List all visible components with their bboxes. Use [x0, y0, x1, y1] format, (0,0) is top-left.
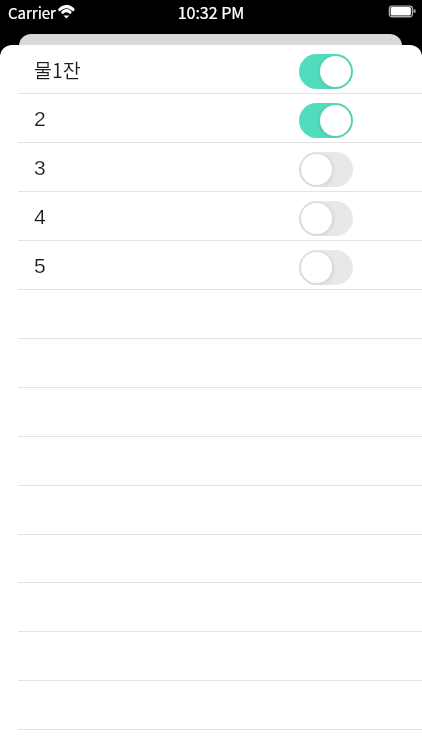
- button[interactable]: [0, 486, 422, 535]
- button[interactable]: [0, 535, 422, 584]
- staticText: 5: [34, 254, 46, 277]
- button[interactable]: 물1잔: [0, 45, 422, 94]
- button[interactable]: Toggle off: [299, 250, 353, 285]
- button[interactable]: 2: [0, 94, 422, 143]
- staticText: 2: [34, 107, 46, 130]
- button[interactable]: [0, 633, 422, 682]
- staticText: 3: [34, 156, 46, 179]
- staticText: Carrier: [8, 2, 56, 24]
- button[interactable]: Toggle off: [299, 201, 353, 236]
- button[interactable]: 3: [0, 143, 422, 192]
- button[interactable]: 4: [0, 192, 422, 241]
- button[interactable]: [0, 682, 422, 731]
- button[interactable]: [0, 339, 422, 388]
- button[interactable]: [0, 388, 422, 437]
- staticText: 4: [34, 205, 46, 228]
- button[interactable]: Toggle on: [299, 54, 353, 89]
- staticText: 10:32 PM: [0, 0, 422, 23]
- staticText: 물1잔: [34, 55, 81, 83]
- button[interactable]: [0, 290, 422, 339]
- button[interactable]: 5: [0, 241, 422, 290]
- button[interactable]: [0, 584, 422, 633]
- button[interactable]: Toggle on: [299, 103, 353, 138]
- button[interactable]: [0, 437, 422, 486]
- button[interactable]: Toggle off: [299, 152, 353, 187]
